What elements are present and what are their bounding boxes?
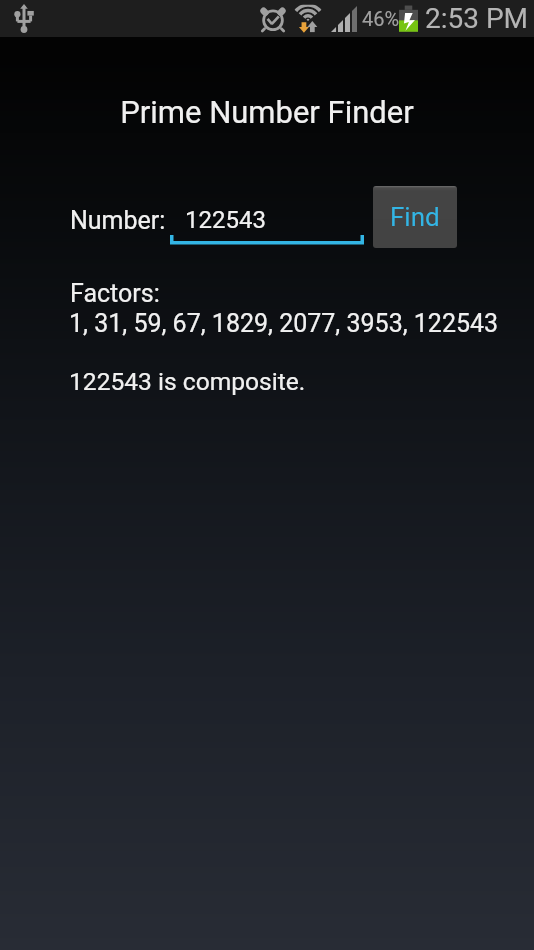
staticText: 46% bbox=[362, 7, 400, 30]
staticText: 1, 31, 59, 67, 1829, 2077, 3953, 122543 bbox=[69, 309, 499, 338]
staticText: 2:53 PM bbox=[425, 2, 529, 35]
staticText: Factors: bbox=[70, 279, 160, 308]
other: USB connected bbox=[14, 4, 34, 33]
staticText: Number: bbox=[70, 206, 166, 235]
button[interactable]: Find bbox=[373, 186, 457, 248]
button[interactable]: Number input field bbox=[170, 196, 364, 246]
staticText: 122543 bbox=[185, 206, 266, 234]
staticText: Find bbox=[390, 202, 440, 232]
staticText: 122543 is composite. bbox=[69, 367, 306, 396]
staticText: Prime Number Finder bbox=[0, 94, 534, 130]
